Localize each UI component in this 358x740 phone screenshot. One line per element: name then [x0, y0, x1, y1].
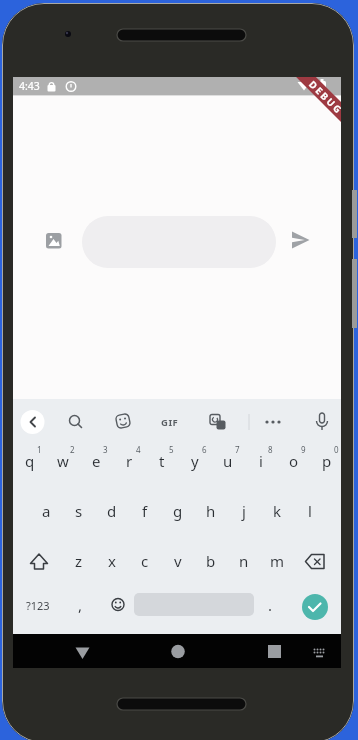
staticText: c: [141, 551, 149, 571]
button[interactable]: j: [229, 491, 259, 531]
button[interactable]: [164, 639, 192, 665]
button[interactable]: [42, 227, 68, 253]
button[interactable]: n: [229, 541, 259, 581]
staticText: q: [25, 451, 35, 471]
button[interactable]: f: [130, 491, 160, 531]
button[interactable]: [303, 545, 331, 577]
button[interactable]: [310, 410, 334, 434]
staticText: h: [206, 501, 216, 521]
staticText: j: [242, 501, 246, 521]
staticText: u: [223, 451, 233, 471]
button[interactable]: u: [213, 441, 243, 481]
staticText: w: [57, 451, 69, 471]
staticText: 5: [169, 444, 174, 455]
button[interactable]: r: [114, 441, 144, 481]
staticText: 9: [301, 444, 306, 455]
staticText: a: [42, 501, 51, 521]
staticText: v: [174, 551, 182, 571]
button[interactable]: h: [196, 491, 226, 531]
button[interactable]: [111, 409, 135, 433]
button[interactable]: [68, 639, 96, 665]
staticText: .: [268, 595, 273, 615]
button[interactable]: .: [258, 585, 282, 625]
staticText: m: [270, 551, 285, 571]
staticText: d: [107, 501, 117, 521]
staticText: x: [108, 551, 116, 571]
button[interactable]: p: [312, 441, 341, 481]
staticText: b: [206, 551, 216, 571]
button[interactable]: i: [246, 441, 276, 481]
staticText: y: [191, 451, 199, 471]
button[interactable]: [106, 591, 130, 619]
button[interactable]: v: [163, 541, 193, 581]
staticText: GIF: [161, 416, 179, 429]
button[interactable]: [23, 545, 51, 577]
staticText: 1: [37, 444, 42, 455]
button[interactable]: a: [31, 491, 61, 531]
staticText: g: [173, 501, 183, 521]
staticText: t: [159, 451, 165, 471]
button[interactable]: s: [64, 491, 94, 531]
button[interactable]: b: [196, 541, 226, 581]
button[interactable]: [306, 639, 334, 665]
button[interactable]: [302, 594, 328, 620]
staticText: k: [273, 501, 282, 521]
button[interactable]: [21, 410, 45, 434]
button[interactable]: [288, 227, 314, 253]
staticText: s: [75, 501, 83, 521]
button[interactable]: d: [97, 491, 127, 531]
button[interactable]: [62, 410, 86, 434]
button[interactable]: l: [295, 491, 325, 531]
staticText: 8: [268, 444, 273, 455]
staticText: f: [142, 501, 148, 521]
button[interactable]: GIF: [153, 409, 187, 435]
staticText: 6: [202, 444, 207, 455]
button[interactable]: x: [97, 541, 127, 581]
button[interactable]: ?123: [17, 585, 59, 625]
staticText: z: [75, 551, 83, 571]
staticText: ?123: [26, 598, 50, 613]
staticText: 7: [235, 444, 240, 455]
staticText: r: [126, 451, 133, 471]
button[interactable]: [205, 410, 229, 434]
button[interactable]: [261, 639, 289, 665]
staticText: 3: [103, 444, 108, 455]
button[interactable]: y: [180, 441, 210, 481]
button[interactable]: ,: [68, 585, 92, 625]
button[interactable]: [261, 410, 285, 434]
button[interactable]: t: [147, 441, 177, 481]
button[interactable]: o: [279, 441, 309, 481]
button[interactable]: g: [163, 491, 193, 531]
button[interactable]: q: [15, 441, 45, 481]
button[interactable]: e: [81, 441, 111, 481]
staticText: p: [322, 451, 332, 471]
button[interactable]: c: [130, 541, 160, 581]
staticText: o: [289, 451, 299, 471]
staticText: 0: [334, 444, 339, 455]
button[interactable]: w: [48, 441, 78, 481]
staticText: ,: [78, 595, 83, 615]
staticText: n: [239, 551, 249, 571]
staticText: 4: [136, 444, 141, 455]
staticText: l: [308, 501, 312, 521]
button[interactable]: m: [262, 541, 292, 581]
button[interactable]: z: [64, 541, 94, 581]
staticText: 4:43: [19, 79, 40, 93]
staticText: i: [259, 451, 263, 471]
staticText: DEBUG: [306, 78, 341, 117]
staticText: e: [92, 451, 101, 471]
staticText: 2: [70, 444, 75, 455]
button[interactable]: k: [262, 491, 292, 531]
